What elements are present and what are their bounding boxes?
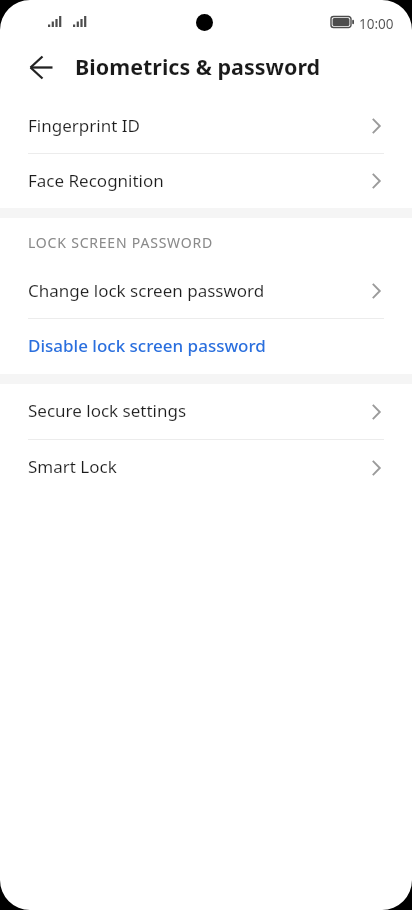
button[interactable]: Smart Lock	[0, 440, 412, 495]
button[interactable]	[19, 44, 63, 88]
staticText: Secure lock settings	[28, 399, 372, 422]
staticText: LOCK SCREEN PASSWORD	[28, 233, 214, 252]
staticText: Smart Lock	[28, 455, 372, 478]
button[interactable]: Face Recognition	[0, 154, 412, 208]
button[interactable]: Fingerprint ID	[0, 99, 412, 153]
staticText: 10:00	[359, 15, 394, 33]
staticText: Fingerprint ID	[28, 114, 372, 137]
button[interactable]: Change lock screen password	[0, 264, 412, 318]
staticText: Change lock screen password	[28, 279, 372, 302]
staticText: Face Recognition	[28, 169, 372, 192]
staticText: Disable lock screen password	[28, 334, 372, 357]
button[interactable]: Disable lock screen password	[0, 319, 412, 374]
button[interactable]: Secure lock settings	[0, 384, 412, 439]
staticText: Biometrics & password	[75, 52, 321, 81]
